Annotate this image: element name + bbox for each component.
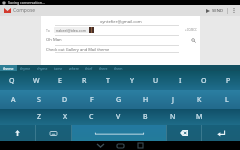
staticText: T <box>106 76 110 86</box>
staticText: W <box>33 76 40 86</box>
button[interactable]: Home <box>112 141 128 150</box>
button[interactable]: Delete <box>213 109 240 125</box>
staticText: M <box>196 112 203 122</box>
button[interactable]: L <box>213 90 240 109</box>
button[interactable]: Space <box>72 125 166 141</box>
staticText: nabeel@idea.com <box>56 28 87 33</box>
button[interactable]: tame <box>51 65 66 71</box>
button[interactable]: theme <box>0 65 17 71</box>
button[interactable]: Switch keyboard <box>36 125 71 141</box>
staticText: there <box>99 66 108 71</box>
button[interactable]: D <box>52 90 78 109</box>
button[interactable]: Back <box>92 141 108 150</box>
staticText: thief <box>85 66 93 71</box>
button[interactable]: E <box>48 71 72 90</box>
button[interactable]: thief <box>82 65 96 71</box>
button[interactable]: SEND <box>204 5 225 16</box>
button[interactable]: W <box>24 71 48 90</box>
button[interactable]: I <box>168 71 192 90</box>
button[interactable]: X <box>52 109 78 125</box>
staticText: Saving conversation... <box>8 0 45 5</box>
button[interactable]: V <box>105 109 132 125</box>
button[interactable]: T <box>96 71 120 90</box>
button[interactable]: Oh Man <box>41 35 200 45</box>
staticText: thyme <box>20 66 31 71</box>
button[interactable]: Compose <box>0 5 39 16</box>
staticText: Compose <box>13 7 36 14</box>
staticText: L <box>225 95 229 105</box>
staticText: Check out Gallery and Mail theme <box>46 47 110 52</box>
staticText: D <box>62 95 68 105</box>
button[interactable]: Y <box>120 71 144 90</box>
staticText: tame <box>54 66 63 71</box>
staticText: Q <box>9 76 15 86</box>
staticText: To <box>46 28 50 33</box>
button[interactable]: where <box>66 65 82 71</box>
staticText: theme <box>3 66 14 71</box>
staticText: R <box>82 76 87 86</box>
button[interactable]: More options <box>228 5 240 16</box>
staticText: xyntefier@gmail.com <box>100 19 142 25</box>
button[interactable]: J <box>159 90 186 109</box>
staticText: E <box>58 76 62 86</box>
staticText: Z <box>37 112 42 122</box>
staticText: U <box>153 76 159 86</box>
button[interactable]: Enter <box>202 125 240 141</box>
staticText: them <box>114 66 123 71</box>
button[interactable]: N <box>159 109 186 125</box>
staticText: C <box>89 112 94 122</box>
button[interactable]: Shift <box>0 109 26 125</box>
staticText: J <box>172 95 174 105</box>
button[interactable]: xyntefier@gmail.com <box>41 16 200 25</box>
button[interactable]: Q <box>0 71 24 90</box>
button[interactable]: them <box>111 65 126 71</box>
button[interactable]: R <box>72 71 96 90</box>
staticText: where <box>69 66 79 71</box>
staticText: A <box>11 95 16 105</box>
staticText: V <box>116 112 121 122</box>
button[interactable]: U <box>144 71 168 90</box>
button[interactable]: A <box>0 90 26 109</box>
staticText: X <box>63 112 68 122</box>
button[interactable]: P <box>216 71 240 90</box>
button[interactable]: rhyme <box>34 65 51 71</box>
button[interactable]: Backspace <box>167 125 201 141</box>
staticText: O <box>201 76 207 86</box>
button[interactable]: thyme <box>17 65 34 71</box>
staticText: rhyme <box>37 66 48 71</box>
button[interactable]: Recent apps <box>132 141 148 150</box>
button[interactable]: B <box>132 109 159 125</box>
staticText: S <box>37 95 41 105</box>
staticText: F <box>90 95 94 105</box>
staticText: Y <box>130 76 134 86</box>
staticText: N <box>170 112 176 122</box>
button[interactable]: M <box>186 109 213 125</box>
button[interactable]: there <box>96 65 111 71</box>
staticText: P <box>226 76 231 86</box>
staticText: SEND <box>212 8 223 14</box>
button[interactable]: F <box>78 90 105 109</box>
button[interactable]: K <box>186 90 213 109</box>
staticText: H <box>143 95 149 105</box>
staticText: G <box>116 95 122 105</box>
button[interactable]: Shift <box>0 125 35 141</box>
button[interactable]: Z <box>26 109 52 125</box>
button[interactable]: S <box>26 90 52 109</box>
staticText: B <box>143 112 148 122</box>
staticText: Oh Man <box>46 37 62 43</box>
staticText: K <box>197 95 202 105</box>
button[interactable]: C <box>78 109 105 125</box>
other: Attach <box>191 38 196 43</box>
button[interactable]: G <box>105 90 132 109</box>
staticText: I <box>179 76 182 86</box>
button[interactable]: H <box>132 90 159 109</box>
button[interactable]: To <box>41 25 200 35</box>
staticText: +CC/BCC <box>185 28 197 32</box>
button[interactable]: O <box>192 71 216 90</box>
